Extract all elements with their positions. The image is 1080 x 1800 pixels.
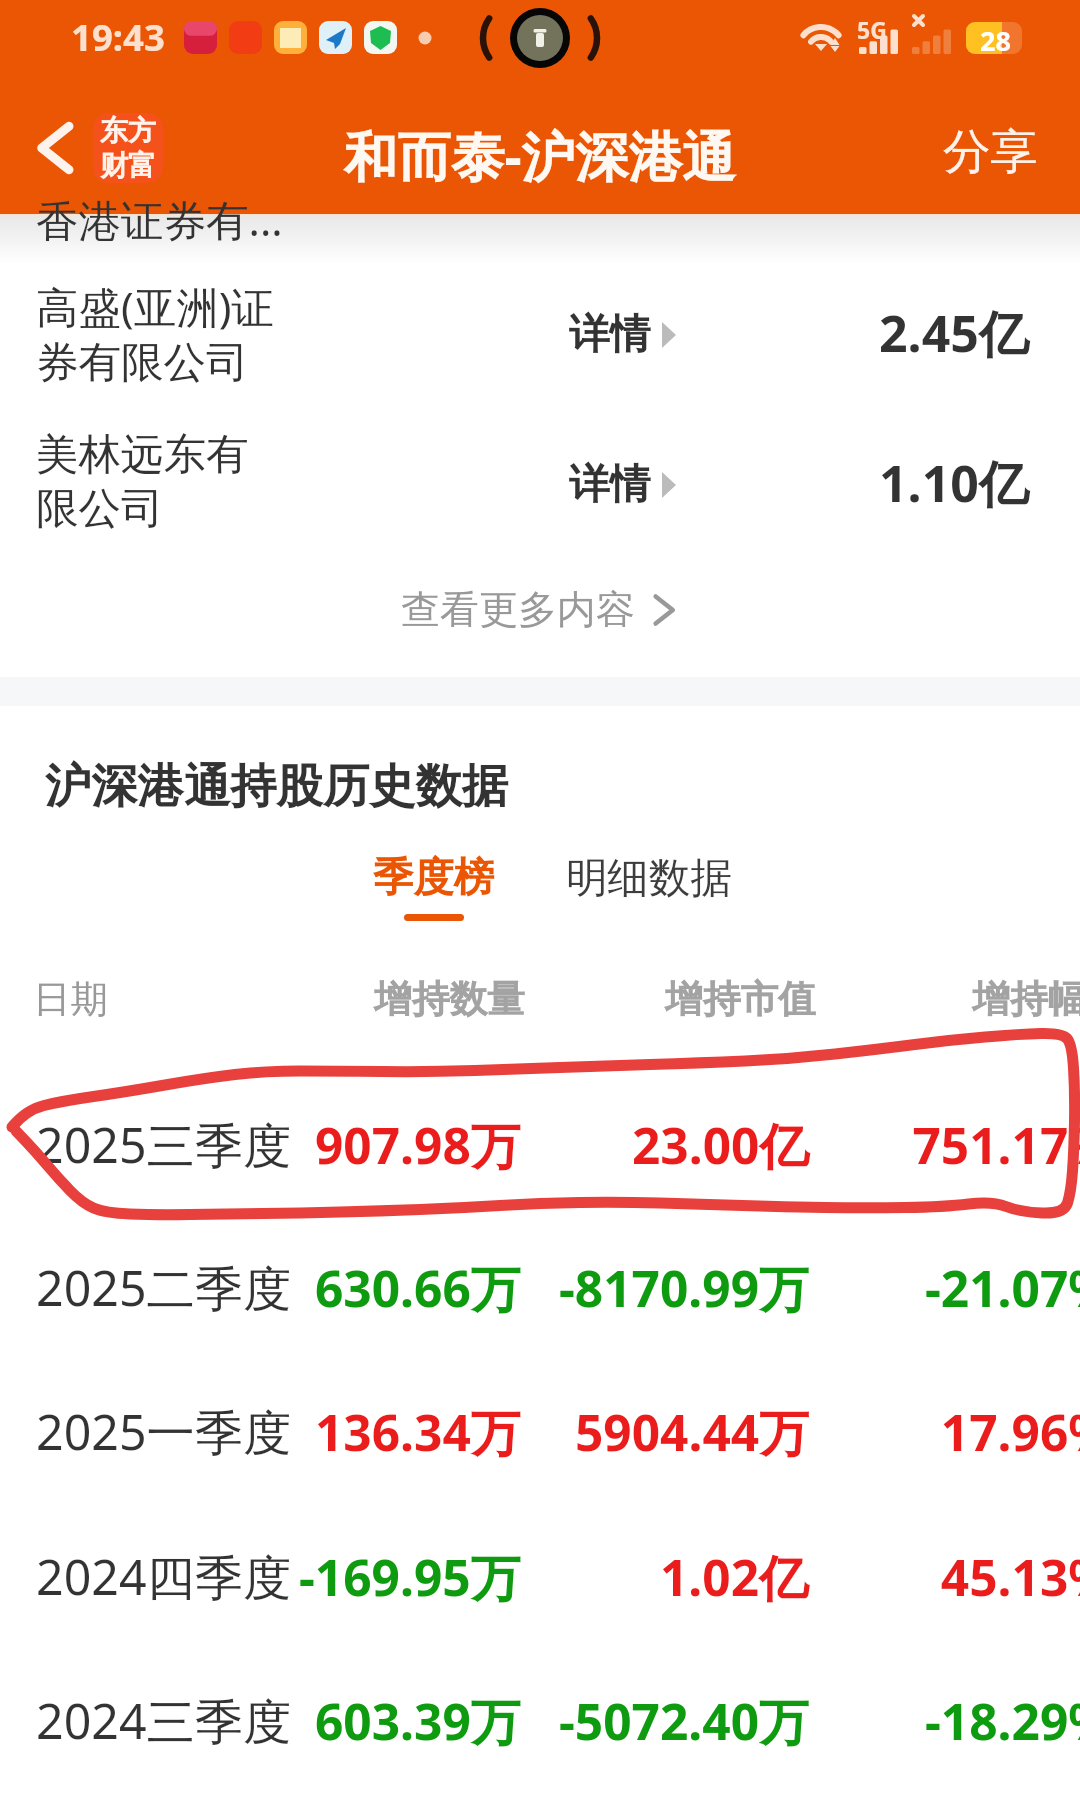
- staticText: 2024三季度: [36, 1687, 292, 1753]
- staticText: 136.34万: [315, 1398, 521, 1460]
- staticText: 详情: [569, 459, 651, 510]
- button[interactable]: 美林远东有: [0, 426, 1080, 576]
- staticText: 限公司: [36, 482, 164, 536]
- staticText: 45.13%: [940, 1543, 1080, 1611]
- staticText: 和而泰-沪深港通: [344, 119, 736, 192]
- staticText: 17.96%: [940, 1398, 1080, 1466]
- staticText: 2024四季度: [36, 1543, 292, 1609]
- button[interactable]: 2024四季度: [0, 1513, 1080, 1657]
- button[interactable]: 明细数据: [566, 852, 732, 904]
- staticText: 2025三季度: [36, 1111, 292, 1177]
- staticText: 券有限公司: [36, 336, 249, 390]
- staticText: 2025二季度: [36, 1254, 292, 1320]
- staticText: 23.00亿: [632, 1111, 809, 1179]
- staticText: 高盛(亚洲)证: [36, 278, 274, 336]
- staticText: -21.07%: [924, 1254, 1080, 1322]
- staticText: 630.66万: [315, 1254, 521, 1316]
- staticText: -8170.99万: [559, 1254, 809, 1322]
- staticText: 1.02亿: [660, 1543, 809, 1611]
- staticText: 增持数量: [374, 976, 525, 1023]
- button[interactable]: 2024三季度: [0, 1657, 1080, 1800]
- staticText: 增持市值: [665, 976, 816, 1023]
- staticText: 财富: [100, 148, 156, 183]
- button[interactable]: East Money: [93, 113, 163, 183]
- staticText: 查看更多内容: [401, 585, 635, 634]
- button[interactable]: 分享: [929, 110, 1052, 194]
- staticText: 分享: [943, 122, 1038, 182]
- staticText: 907.98万: [315, 1111, 521, 1173]
- button[interactable]: 查看更多内容: [381, 573, 695, 646]
- button[interactable]: 季度榜: [373, 852, 495, 903]
- staticText: 2025一季度: [36, 1398, 292, 1464]
- staticText: 2.45亿: [879, 299, 1029, 367]
- button[interactable]: Back: [20, 113, 90, 183]
- staticText: 5G: [857, 14, 887, 45]
- button[interactable]: 高盛(亚洲)证: [0, 276, 1080, 426]
- staticText: 沪深港通持股历史数据: [45, 757, 508, 815]
- staticText: 28: [980, 22, 1011, 54]
- staticText: -5072.40万: [559, 1687, 809, 1755]
- button[interactable]: 2025二季度: [0, 1224, 1080, 1368]
- staticText: 751.17%: [912, 1111, 1080, 1179]
- staticText: 5904.44万: [575, 1398, 809, 1466]
- staticText: 19:43: [71, 12, 165, 62]
- staticText: 东方: [100, 113, 156, 148]
- staticText: 美林远东有: [36, 428, 249, 482]
- staticText: 603.39万: [315, 1687, 521, 1749]
- staticText: 1.10亿: [879, 449, 1029, 517]
- staticText: 详情: [569, 309, 651, 360]
- staticText: 明细数据: [566, 852, 732, 904]
- staticText: -18.29%: [924, 1687, 1080, 1755]
- button[interactable]: 2025三季度: [0, 1081, 1080, 1225]
- staticText: 季度榜: [373, 852, 495, 903]
- button[interactable]: 2025一季度: [0, 1368, 1080, 1512]
- staticText: 香港证券有...: [36, 191, 283, 249]
- staticText: 日期: [33, 976, 108, 1023]
- staticText: -169.95万: [299, 1543, 521, 1605]
- staticText: 增持幅度: [972, 976, 1080, 1023]
